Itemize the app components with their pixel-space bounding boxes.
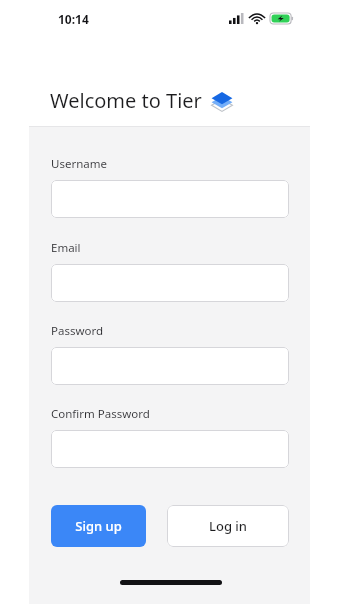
staticText: Confirm Password (51, 406, 150, 422)
button[interactable]: Email (51, 264, 289, 302)
staticText: Email (51, 240, 81, 256)
staticText: Password (51, 323, 104, 339)
staticText: Welcome to Tier (50, 87, 202, 114)
button[interactable]: Sign up (51, 505, 146, 547)
staticText: Log in (209, 517, 247, 535)
staticText: 10:14 (58, 11, 89, 27)
button[interactable]: Username (51, 180, 289, 218)
button[interactable]: Password (51, 347, 289, 385)
staticText: Username (51, 156, 107, 172)
button[interactable]: Log in (167, 505, 289, 547)
button[interactable]: Confirm Password (51, 430, 289, 468)
staticText: Sign up (75, 517, 122, 535)
